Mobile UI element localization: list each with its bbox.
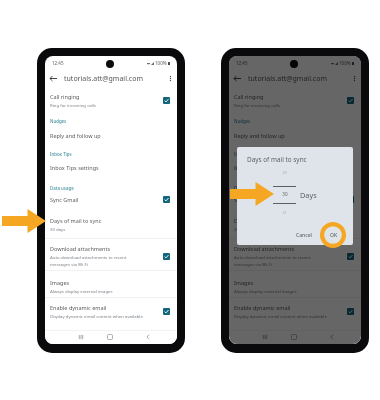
button[interactable]: Images <box>229 279 361 294</box>
other: Call ringing <box>347 97 354 104</box>
staticText: 30 <box>282 191 288 197</box>
button[interactable]: Sync Gmail <box>229 196 361 203</box>
staticText: Images <box>50 279 70 286</box>
button[interactable]: Reply and follow up <box>229 132 361 139</box>
button[interactable]: Days of mail to sync <box>229 217 361 232</box>
staticText: Download attachments <box>234 245 295 252</box>
staticText: Auto-download attachments to recent mess… <box>234 254 311 268</box>
staticText: 12:45 <box>236 60 248 66</box>
staticText: Ring for incoming calls <box>50 102 96 108</box>
button[interactable]: Navigate up <box>232 73 243 84</box>
button[interactable]: Back <box>326 331 338 343</box>
button[interactable]: Cancel <box>292 229 316 242</box>
staticText: Nudges <box>50 118 67 124</box>
other: Call ringing <box>163 97 170 104</box>
staticText: Enable dynamic email <box>234 304 291 311</box>
button[interactable]: Enable dynamic email <box>229 304 361 319</box>
staticText: Always display external images <box>234 288 297 294</box>
button[interactable]: Download attachments <box>229 245 361 268</box>
staticText: Inbox Tips <box>50 151 72 157</box>
button[interactable]: Call ringing <box>229 93 361 108</box>
button[interactable]: More options <box>166 74 175 83</box>
other: Download attachments <box>163 253 170 260</box>
staticText: Data usage <box>234 185 258 191</box>
button[interactable]: Call ringing <box>45 93 177 108</box>
staticText: tutorials.att@gmail.com <box>64 74 143 84</box>
staticText: Call ringing <box>234 93 264 100</box>
button[interactable]: Download attachments <box>45 245 177 268</box>
staticText: Reply and follow up <box>234 132 285 139</box>
staticText: Ring for incoming calls <box>234 102 280 108</box>
button[interactable]: Recent apps <box>259 331 271 343</box>
staticText: Display dynamic email content when avail… <box>234 313 327 319</box>
staticText: Inbox Tips settings <box>50 164 99 171</box>
staticText: Images <box>234 279 254 286</box>
other: Enable dynamic email <box>347 308 354 315</box>
button[interactable]: More options <box>350 74 359 83</box>
staticText: 31 <box>282 210 287 215</box>
staticText: Sync Gmail <box>50 196 79 203</box>
staticText: Cancel <box>296 232 312 239</box>
other: Enable dynamic email <box>163 308 170 315</box>
button[interactable]: Recent apps <box>75 331 87 343</box>
staticText: Reply and follow up <box>50 132 101 139</box>
button[interactable]: Home <box>104 331 116 343</box>
staticText: Nudges <box>234 118 251 124</box>
staticText: Days of mail to sync <box>50 217 102 224</box>
staticText: Call ringing <box>50 93 80 100</box>
staticText: 30 days <box>50 226 66 232</box>
button[interactable]: Images <box>45 279 177 294</box>
other: Sync Gmail <box>163 196 170 203</box>
button[interactable]: Enable dynamic email <box>45 304 177 319</box>
staticText: Sync Gmail <box>234 196 263 203</box>
staticText: 29 <box>282 170 287 175</box>
staticText: Inbox Tips <box>234 151 256 157</box>
button[interactable]: Navigate up <box>48 73 59 84</box>
button[interactable]: Sync Gmail <box>45 196 177 203</box>
staticText: Always display external images <box>50 288 113 294</box>
button[interactable]: Inbox Tips settings <box>229 164 361 171</box>
staticText: 100% <box>155 60 167 66</box>
staticText: Auto-download attachments to recent mess… <box>50 254 127 268</box>
staticText: Download attachments <box>50 245 111 252</box>
other: OK highlighted <box>320 222 346 248</box>
other: Download attachments <box>347 253 354 260</box>
staticText: Display dynamic email content when avail… <box>50 313 143 319</box>
staticText: OK <box>330 232 338 239</box>
staticText: tutorials.att@gmail.com <box>248 74 327 84</box>
button[interactable]: Back <box>142 331 154 343</box>
staticText: Days of mail to sync <box>247 155 307 164</box>
staticText: Days of mail to sync <box>234 217 286 224</box>
button[interactable]: Home <box>288 331 300 343</box>
staticText: Enable dynamic email <box>50 304 107 311</box>
staticText: Inbox Tips settings <box>234 164 283 171</box>
staticText: 30 days <box>234 226 250 232</box>
other: Sync Gmail <box>347 196 354 203</box>
button[interactable]: Days of mail to sync <box>45 217 177 232</box>
staticText: 12:45 <box>52 60 64 66</box>
staticText: Data usage <box>50 185 74 191</box>
button[interactable]: OK <box>326 229 342 242</box>
button[interactable]: Reply and follow up <box>45 132 177 139</box>
staticText: 100% <box>339 60 351 66</box>
staticText: Days <box>300 190 317 200</box>
button[interactable]: Inbox Tips settings <box>45 164 177 171</box>
